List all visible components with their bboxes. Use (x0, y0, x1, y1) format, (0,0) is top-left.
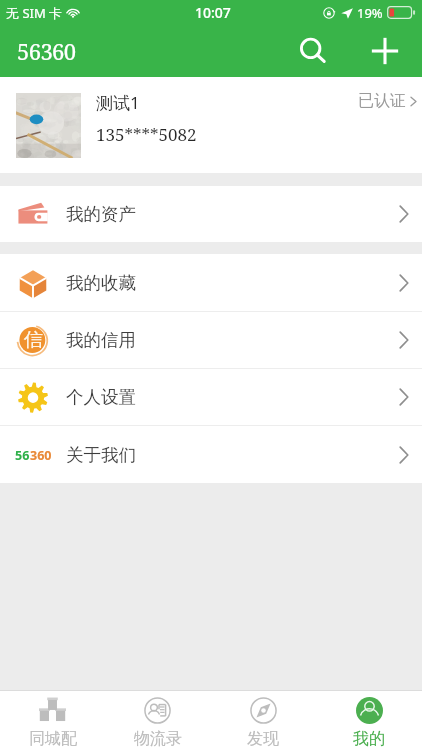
staticText: 关于我们 (66, 444, 136, 466)
button[interactable]: 个人设置 (0, 369, 422, 425)
button[interactable]: 测试1 (0, 77, 422, 173)
button[interactable]: Search (291, 29, 335, 73)
button[interactable]: 同城配 (0, 691, 105, 750)
staticText: 我的资产 (66, 203, 136, 225)
button[interactable]: 物流录 (105, 691, 210, 750)
staticText: 个人设置 (66, 386, 136, 408)
button[interactable]: 发现 (210, 691, 316, 750)
staticText: 无 SIM 卡 (6, 4, 63, 22)
button[interactable]: 信 (0, 312, 422, 368)
staticText: 10:07 (195, 3, 231, 22)
button[interactable]: 我的资产 (0, 186, 422, 242)
button[interactable]: Add (363, 29, 407, 73)
button[interactable]: 我的收藏 (0, 254, 422, 311)
staticText: 19% (357, 4, 383, 22)
button[interactable]: 我的 (316, 691, 422, 750)
staticText: 我的信用 (66, 329, 136, 351)
staticText: 360 (30, 447, 52, 464)
staticText: 信 (24, 328, 43, 352)
staticText: 物流录 (134, 729, 182, 749)
staticText: 同城配 (29, 729, 77, 749)
staticText: 已认证 (358, 91, 406, 111)
staticText: 135****5082 (96, 123, 197, 146)
staticText: 56 (15, 447, 30, 464)
staticText: 我的收藏 (66, 272, 136, 294)
staticText: 测试1 (96, 91, 140, 114)
staticText: 发现 (247, 729, 279, 749)
staticText: 56360 (17, 36, 76, 66)
staticText: 我的 (353, 729, 385, 749)
button[interactable]: 56 (0, 426, 422, 483)
